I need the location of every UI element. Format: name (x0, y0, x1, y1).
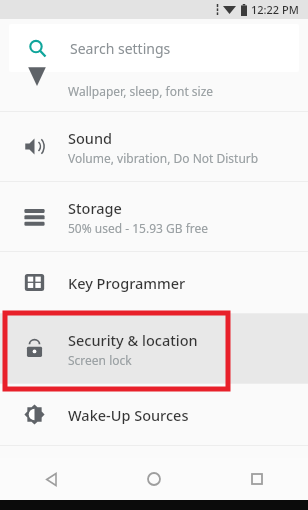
staticText: Storage (68, 198, 122, 218)
staticText: 50% used - 15.93 GB free (68, 220, 209, 236)
staticText: Security & location (68, 330, 198, 350)
button[interactable]: Sound (0, 112, 308, 181)
staticText: Sound (68, 128, 113, 148)
staticText: 12:22 PM (251, 2, 299, 17)
button[interactable]: Key Programmer (0, 252, 308, 313)
staticText: Search settings (70, 39, 171, 58)
staticText: Screen lock (68, 352, 132, 368)
button[interactable]: Back (0, 458, 102, 500)
button[interactable]: Wallpaper, sleep, font size (0, 77, 308, 111)
button[interactable]: Storage (0, 182, 308, 251)
button[interactable]: Security & location (0, 314, 308, 383)
button[interactable]: Wake-Up Sources (0, 384, 308, 445)
staticText: Volume, vibration, Do Not Disturb (68, 150, 259, 166)
staticText: Wake-Up Sources (68, 405, 189, 425)
staticText: Key Programmer (68, 273, 186, 293)
button[interactable]: Recent apps (205, 458, 308, 500)
button[interactable]: Search settings (9, 24, 299, 72)
staticText: Wallpaper, sleep, font size (68, 83, 214, 99)
button[interactable]: Home (102, 458, 205, 500)
